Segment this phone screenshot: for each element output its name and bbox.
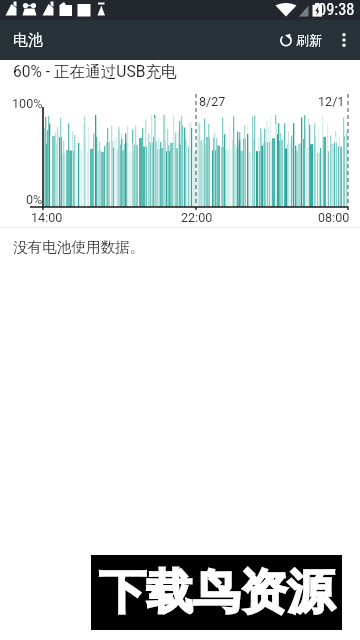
staticText: 09:38 (318, 0, 355, 19)
staticText: 刷新 (296, 32, 322, 48)
button[interactable]: 刷新 (273, 26, 328, 54)
staticText: 22:00 (181, 210, 213, 225)
staticText: 08:00 (318, 210, 350, 225)
staticText: 0% (26, 192, 43, 207)
staticText: 下载鸟资源 (99, 563, 334, 622)
staticText: 60% - 正在通过USB充电 (13, 62, 177, 82)
staticText: 100% (12, 96, 43, 111)
staticText: 没有电池使用数据。 (13, 238, 145, 256)
button[interactable]: More options (328, 24, 360, 56)
staticText: 14:00 (31, 210, 63, 225)
staticText: 12/1 (318, 94, 345, 109)
staticText: 8/27 (199, 94, 226, 109)
staticText: 电池 (13, 31, 43, 50)
